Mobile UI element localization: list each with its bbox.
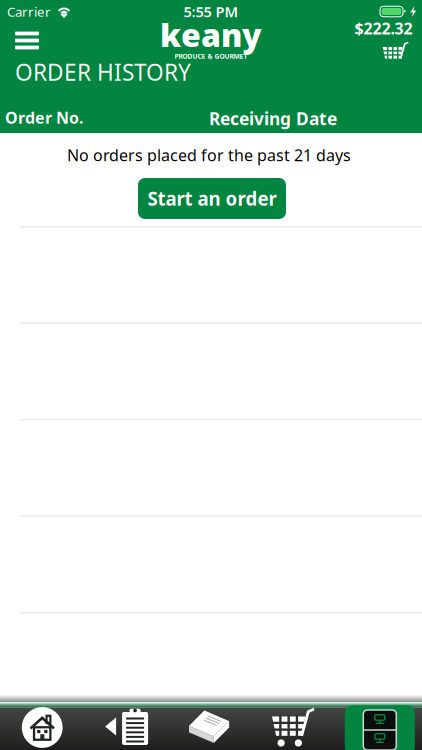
staticText: 5:55 PM	[183, 2, 238, 21]
button[interactable]: Cart	[354, 18, 412, 66]
button[interactable]: Menu	[0, 0, 39, 49]
button[interactable]: Cart	[253, 695, 338, 750]
button[interactable]: Start an order	[138, 178, 286, 219]
staticText: ORDER HISTORY	[15, 57, 191, 87]
staticText: Receiving Date	[209, 107, 337, 130]
button[interactable]: Orders	[84, 695, 169, 750]
staticText: PRODUCE & GOURMET	[174, 52, 247, 61]
button[interactable]: Order history	[338, 695, 422, 750]
button[interactable]: Catalog	[169, 695, 253, 750]
staticText: Carrier	[7, 3, 51, 20]
staticText: keany	[160, 13, 262, 56]
staticText: No orders placed for the past 21 days	[67, 144, 351, 166]
button[interactable]: Home	[0, 695, 84, 750]
staticText: Start an order	[147, 186, 276, 211]
staticText: $222.32	[354, 18, 412, 39]
staticText: Order No.	[5, 107, 83, 128]
